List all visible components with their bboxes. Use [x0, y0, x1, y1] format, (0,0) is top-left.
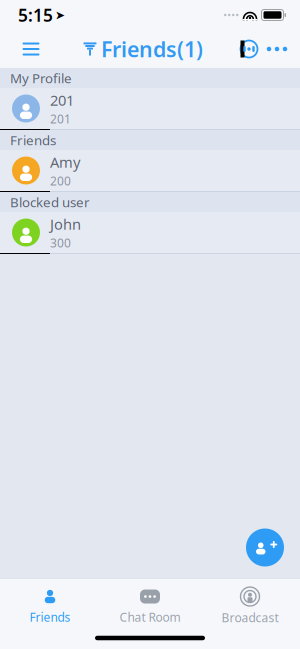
staticText: 200 — [50, 173, 71, 189]
staticText: Chat Room — [119, 609, 180, 625]
button[interactable]: More options — [264, 32, 290, 66]
staticText: Friends(1) — [101, 35, 203, 63]
staticText: ➤ — [55, 8, 65, 22]
button[interactable]: John — [0, 212, 300, 254]
staticText: Blocked user — [10, 193, 90, 211]
button[interactable]: Amy — [0, 150, 300, 192]
button[interactable]: Chat Room — [100, 579, 200, 627]
button[interactable]: Friends(1) — [83, 29, 203, 69]
button[interactable]: Broadcast — [200, 579, 300, 627]
staticText: 201 — [50, 111, 71, 127]
staticText: Friends — [29, 609, 70, 625]
staticText: Friends — [10, 131, 56, 149]
button[interactable]: Add friend — [242, 524, 288, 570]
staticText: 5:15 — [18, 3, 53, 26]
button[interactable]: 201 — [0, 88, 300, 130]
staticText: 300 — [50, 235, 71, 251]
button[interactable]: Friends — [0, 579, 100, 627]
staticText: My Profile — [10, 69, 72, 87]
staticText: 201 — [50, 90, 74, 110]
staticText: John — [50, 214, 81, 234]
staticText: Broadcast — [221, 609, 278, 625]
staticText: Amy — [50, 152, 80, 172]
button[interactable]: Menu — [10, 32, 52, 66]
button[interactable]: Broadcast — [234, 35, 264, 63]
